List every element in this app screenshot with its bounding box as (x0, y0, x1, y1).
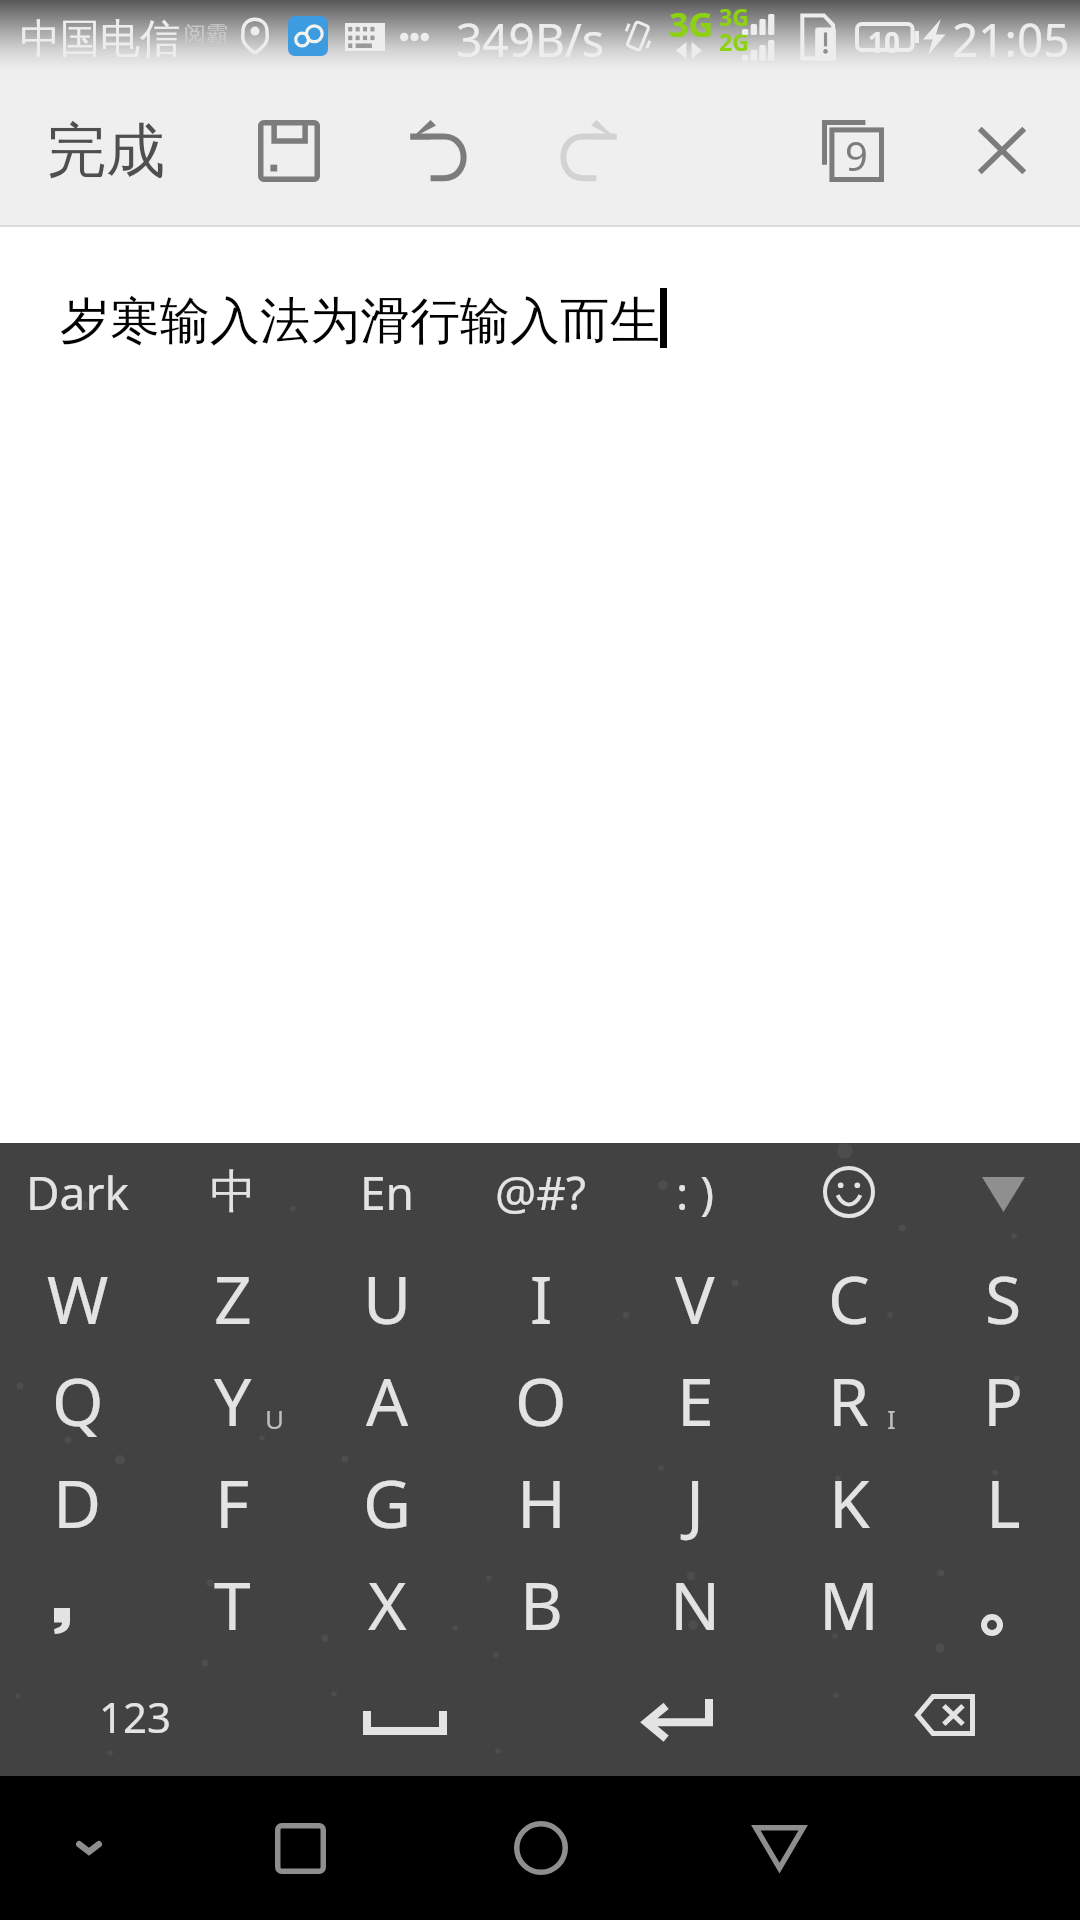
button[interactable]: G (310, 1451, 464, 1553)
button[interactable]: 中 (155, 1143, 310, 1241)
button[interactable]: 123 (40, 1655, 230, 1765)
button[interactable]: K (772, 1451, 926, 1553)
staticText: X (368, 1559, 407, 1649)
button[interactable]: J (618, 1451, 772, 1553)
button[interactable]: W (0, 1247, 155, 1349)
button[interactable]: I (464, 1247, 618, 1349)
button[interactable]: L (926, 1451, 1080, 1553)
button[interactable]: Z (155, 1247, 310, 1349)
staticText: S (985, 1253, 1022, 1343)
staticText: 完成 (47, 114, 165, 188)
staticText: L (986, 1457, 1021, 1547)
button[interactable]: M (772, 1553, 926, 1655)
button[interactable]: E (618, 1349, 772, 1451)
staticText: 349B/s (456, 8, 604, 71)
staticText: F (215, 1457, 250, 1547)
button[interactable] (926, 1553, 1080, 1655)
staticText: 3G (719, 1, 749, 32)
staticText: N (670, 1559, 721, 1649)
button[interactable]: U (310, 1247, 464, 1349)
staticText: R (828, 1355, 870, 1445)
staticText: C (828, 1253, 870, 1343)
button[interactable]: B (464, 1553, 618, 1655)
button[interactable]: Enter (582, 1655, 772, 1765)
button[interactable]: @#? (464, 1143, 618, 1241)
staticText: En (360, 1161, 415, 1224)
button[interactable]: X (310, 1553, 464, 1655)
button[interactable]: 完成 (20, 93, 192, 209)
button[interactable]: N (618, 1553, 772, 1655)
button[interactable]: S (926, 1247, 1080, 1349)
staticText: 9 (845, 128, 868, 182)
button[interactable]: T (155, 1553, 310, 1655)
staticText: H (517, 1457, 566, 1547)
button[interactable]: Undo (382, 94, 495, 207)
button[interactable]: Close (945, 94, 1058, 207)
button[interactable]: Dark (0, 1143, 155, 1241)
button[interactable]: F (155, 1451, 310, 1553)
staticText: Y (214, 1355, 252, 1445)
staticText: A (366, 1355, 409, 1445)
button[interactable]: Back (689, 1776, 869, 1920)
button[interactable]: C (772, 1247, 926, 1349)
staticText: 3G (669, 1, 714, 47)
button[interactable]: En (310, 1143, 464, 1241)
button[interactable] (0, 1553, 155, 1655)
staticText: 2G (719, 26, 749, 57)
staticText: W (47, 1253, 109, 1343)
staticText: V (675, 1253, 715, 1343)
button[interactable]: A (310, 1349, 464, 1451)
staticText: 123 (99, 1688, 172, 1745)
staticText: B (520, 1559, 563, 1649)
staticText: G (363, 1457, 412, 1547)
staticText: @#? (495, 1161, 587, 1224)
staticText: 岁寒输入法为滑行输入而生 (60, 290, 660, 353)
staticText: : ) (676, 1161, 715, 1224)
button[interactable]: Recents (210, 1776, 390, 1920)
button[interactable]: Backspace (850, 1655, 1040, 1765)
button[interactable]: O (464, 1349, 618, 1451)
staticText: Dark (26, 1161, 129, 1224)
staticText: T (214, 1559, 251, 1649)
staticText: K (829, 1457, 870, 1547)
staticText: I (887, 1401, 896, 1436)
button[interactable]: Redo (531, 94, 644, 207)
button[interactable]: H (464, 1451, 618, 1553)
staticText: P (983, 1355, 1023, 1445)
staticText: Q (52, 1355, 104, 1445)
button[interactable]: Q (0, 1349, 155, 1451)
staticText: M (819, 1559, 879, 1649)
button[interactable]: Space (310, 1655, 500, 1765)
button[interactable]: P (926, 1349, 1080, 1451)
button[interactable]: R (772, 1349, 926, 1451)
staticText: 阅霸 (184, 21, 228, 49)
button[interactable]: V (618, 1247, 772, 1349)
button[interactable]: Home (451, 1776, 631, 1920)
staticText: 中 (210, 1163, 256, 1221)
button[interactable]: Y (155, 1349, 310, 1451)
staticText: U (363, 1253, 412, 1343)
button[interactable]: D (0, 1451, 155, 1553)
button[interactable]: Tabs (796, 94, 909, 207)
staticText: 中国电信 (20, 13, 180, 63)
staticText: U (265, 1401, 285, 1436)
button[interactable]: : ) (618, 1143, 772, 1241)
staticText: Z (214, 1253, 252, 1343)
button[interactable]: Save (232, 94, 345, 207)
staticText: E (677, 1355, 714, 1445)
staticText: 21:05 (952, 8, 1070, 71)
button[interactable]: Hide keyboard (926, 1143, 1080, 1241)
staticText: O (515, 1355, 567, 1445)
button[interactable]: Emoji (772, 1143, 926, 1241)
staticText: J (686, 1457, 705, 1547)
staticText: 10 (868, 23, 901, 61)
staticText: D (53, 1457, 102, 1547)
button[interactable]: Hide keyboard (0, 1776, 180, 1920)
staticText: I (530, 1253, 553, 1343)
